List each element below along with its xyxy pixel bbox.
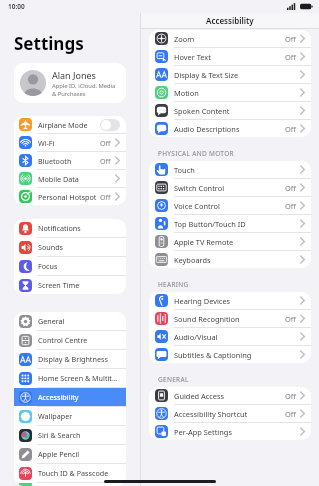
- staticText: Off: [285, 391, 296, 401]
- staticText: Siri & Search: [38, 430, 120, 440]
- staticText: Apple ID, iCloud, Media & Purchases: [52, 82, 116, 98]
- button[interactable]: Touch: [149, 161, 311, 178]
- button[interactable]: Keyboards: [149, 251, 311, 268]
- staticText: GENERAL: [158, 375, 189, 384]
- button[interactable]: Hover Text: [149, 48, 311, 65]
- staticText: Off: [285, 409, 296, 419]
- button[interactable]: Display & Brightness: [14, 350, 126, 368]
- button[interactable]: Sound Recognition: [149, 310, 311, 327]
- button[interactable]: Notifications: [14, 219, 126, 237]
- staticText: Off: [285, 201, 296, 211]
- button[interactable]: Personal Hotspot: [14, 188, 126, 205]
- button[interactable]: Mobile Data: [14, 170, 126, 187]
- button[interactable]: Apple TV Remote: [149, 233, 311, 250]
- button[interactable]: Wallpaper: [14, 407, 126, 425]
- button[interactable]: Guided Access: [149, 387, 311, 404]
- button[interactable]: Airplane Mode toggle: [100, 119, 120, 131]
- button[interactable]: Sounds: [14, 238, 126, 256]
- staticText: Apple Pencil: [38, 449, 120, 459]
- button[interactable]: Accessibility Shortcut: [149, 405, 311, 422]
- staticText: Switch Control: [174, 183, 285, 193]
- button[interactable]: Wi-Fi: [14, 134, 126, 151]
- staticText: Off: [100, 192, 111, 202]
- button[interactable]: Hearing Devices: [149, 292, 311, 309]
- staticText: Airplane Mode: [38, 120, 100, 130]
- button[interactable]: Switch Control: [149, 179, 311, 196]
- button[interactable]: Battery: [14, 483, 126, 486]
- button[interactable]: Spoken Content: [149, 102, 311, 119]
- button[interactable]: Airplane Mode: [14, 116, 126, 133]
- staticText: Wi-Fi: [38, 138, 100, 148]
- button[interactable]: Voice Control: [149, 197, 311, 214]
- button[interactable]: Accessibility: [14, 388, 126, 406]
- button[interactable]: Home Screen & Multitas…: [14, 369, 126, 387]
- staticText: General: [38, 316, 120, 326]
- button[interactable]: Audio Descriptions: [149, 120, 311, 137]
- staticText: Subtitles & Captioning: [174, 350, 300, 360]
- staticText: Off: [285, 183, 296, 193]
- button[interactable]: General: [14, 312, 126, 330]
- staticText: Off: [100, 138, 111, 148]
- staticText: Touch: [174, 165, 300, 175]
- staticText: 10:00: [8, 2, 25, 11]
- button[interactable]: Top Button/Touch ID: [149, 215, 311, 232]
- staticText: Sound Recognition: [174, 314, 285, 324]
- button[interactable]: Audio/Visual: [149, 328, 311, 345]
- staticText: Off: [100, 156, 111, 166]
- staticText: Touch ID & Passcode: [38, 468, 120, 478]
- staticText: Keyboards: [174, 255, 300, 265]
- staticText: Notifications: [38, 223, 120, 233]
- staticText: Audio Descriptions: [174, 124, 285, 134]
- staticText: Accessibility: [38, 392, 120, 402]
- staticText: Settings: [14, 32, 84, 55]
- staticText: Focus: [38, 261, 120, 271]
- staticText: Motion: [174, 88, 300, 98]
- staticText: Home Screen & Multitas…: [38, 373, 120, 383]
- staticText: Per-App Settings: [174, 427, 300, 437]
- staticText: Accessibility Shortcut: [174, 409, 285, 419]
- button[interactable]: Touch ID & Passcode: [14, 464, 126, 482]
- button[interactable]: Control Centre: [14, 331, 126, 349]
- button[interactable]: Siri & Search: [14, 426, 126, 444]
- staticText: Apple TV Remote: [174, 237, 300, 247]
- button[interactable]: Zoom: [149, 30, 311, 47]
- button[interactable]: Screen Time: [14, 276, 126, 294]
- button[interactable]: Display & Text Size: [149, 66, 311, 83]
- button[interactable]: Motion: [149, 84, 311, 101]
- staticText: Accessibility: [206, 15, 254, 26]
- staticText: Wallpaper: [38, 411, 120, 421]
- staticText: Spoken Content: [174, 106, 300, 116]
- staticText: Screen Time: [38, 280, 120, 290]
- button[interactable]: Bluetooth: [14, 152, 126, 169]
- staticText: Top Button/Touch ID: [174, 219, 300, 229]
- staticText: Zoom: [174, 34, 285, 44]
- staticText: Audio/Visual: [174, 332, 300, 342]
- staticText: Mobile Data: [38, 174, 115, 184]
- staticText: Off: [285, 314, 296, 324]
- staticText: HEARING: [158, 280, 189, 289]
- staticText: PHYSICAL AND MOTOR: [158, 149, 234, 158]
- staticText: Control Centre: [38, 335, 120, 345]
- staticText: Voice Control: [174, 201, 285, 211]
- staticText: Sounds: [38, 242, 120, 252]
- staticText: Hover Text: [174, 52, 285, 62]
- staticText: Personal Hotspot: [38, 192, 100, 202]
- staticText: Off: [285, 34, 296, 44]
- staticText: Alan Jones: [52, 69, 96, 81]
- button[interactable]: Per-App Settings: [149, 423, 311, 440]
- button[interactable]: Focus: [14, 257, 126, 275]
- button[interactable]: Subtitles & Captioning: [149, 346, 311, 363]
- staticText: Guided Access: [174, 391, 285, 401]
- staticText: Display & Brightness: [38, 354, 120, 364]
- staticText: Hearing Devices: [174, 296, 300, 306]
- staticText: Off: [285, 52, 296, 62]
- staticText: Bluetooth: [38, 156, 100, 166]
- button[interactable]: Apple Pencil: [14, 445, 126, 463]
- staticText: Display & Text Size: [174, 70, 300, 80]
- staticText: Off: [285, 124, 296, 134]
- button[interactable]: Alan Jones: [14, 63, 126, 103]
